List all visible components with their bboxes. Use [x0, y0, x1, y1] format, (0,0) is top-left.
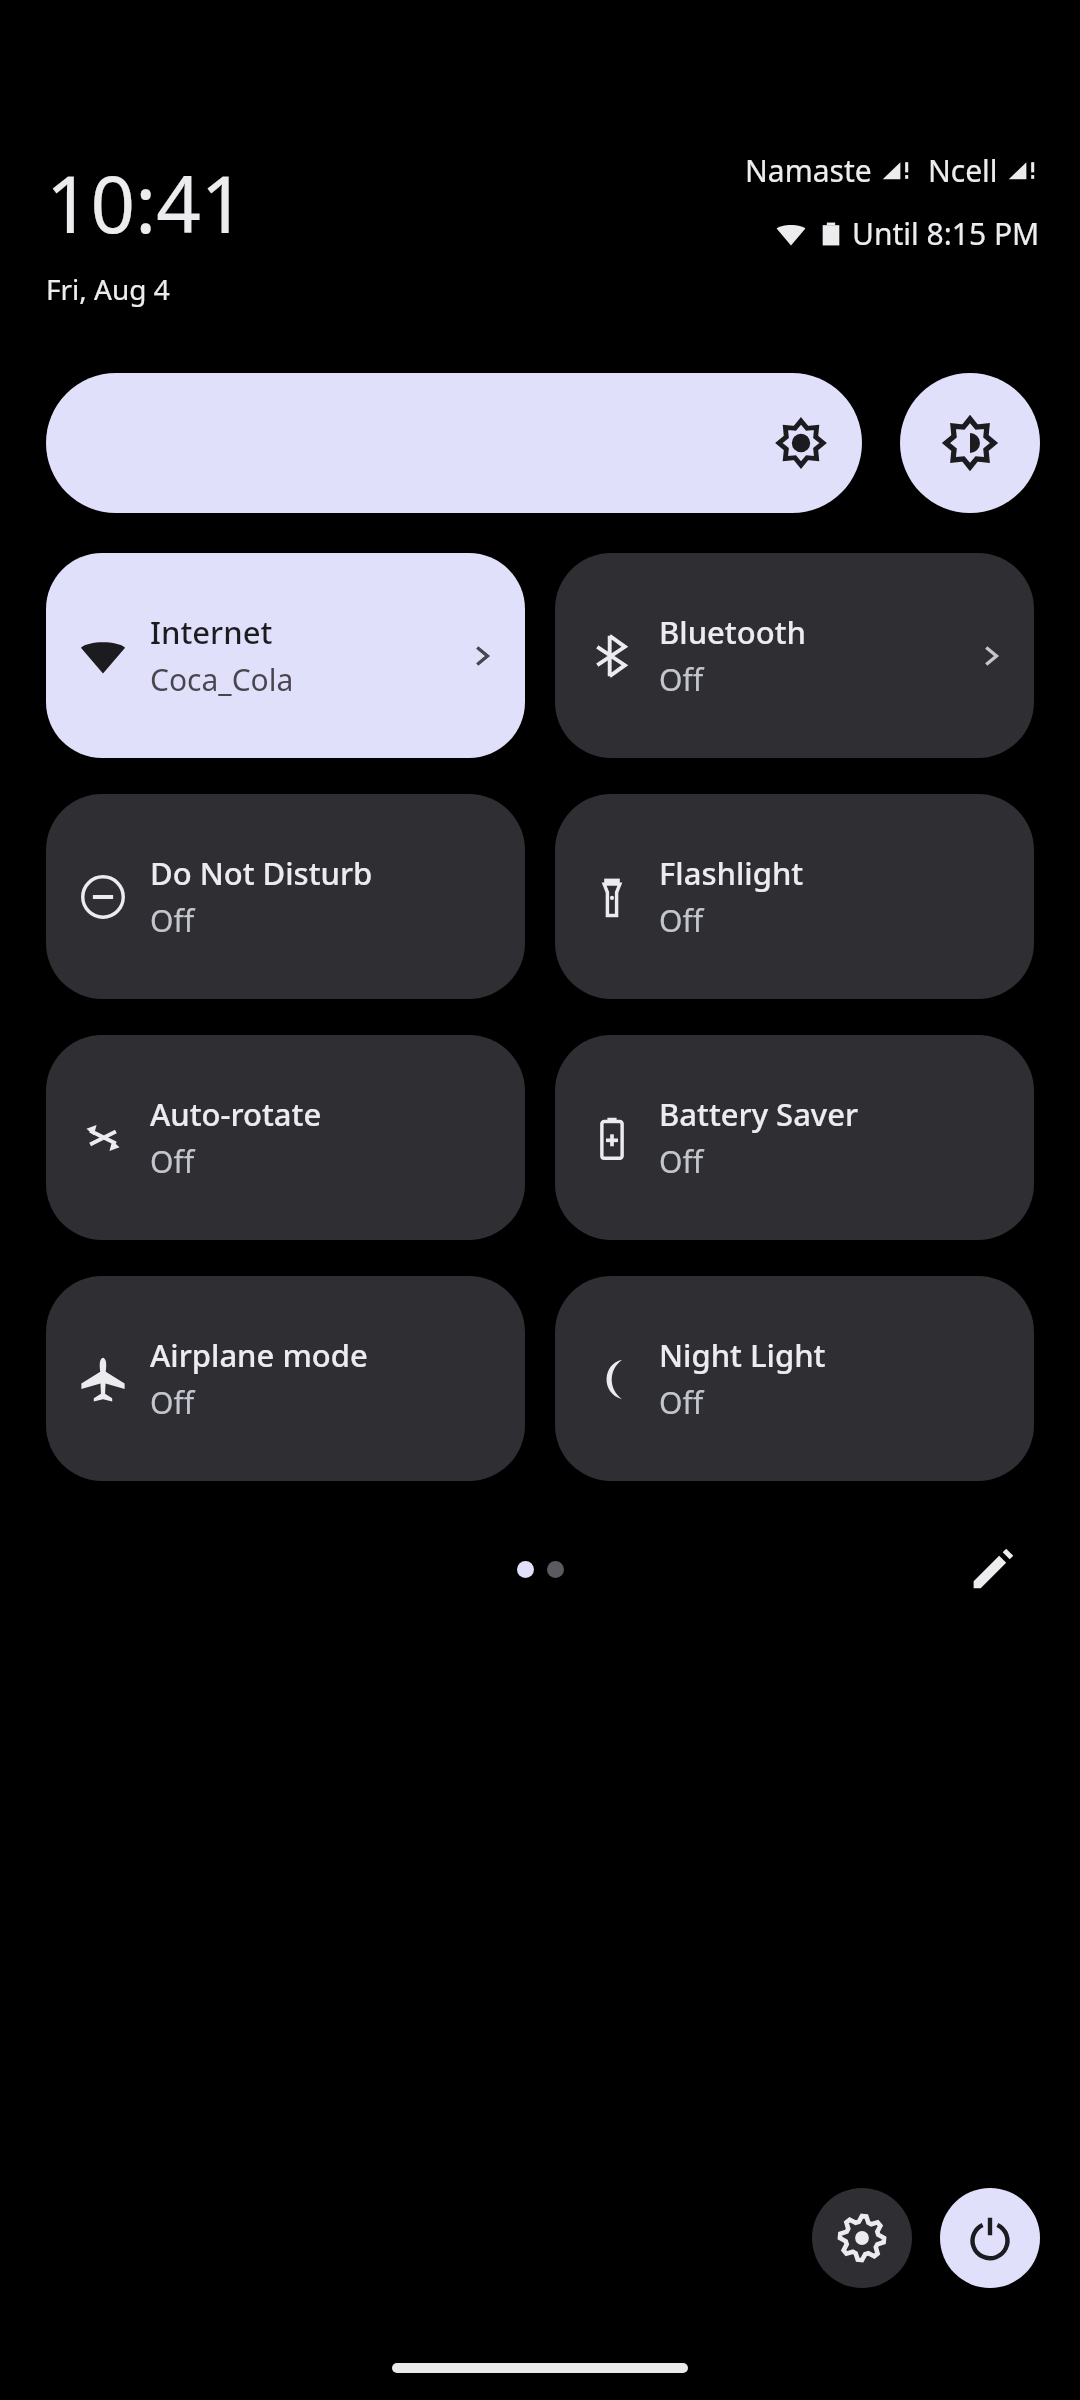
staticText: Auto-rotate [150, 1093, 322, 1135]
staticText: Off [150, 1382, 195, 1423]
staticText: Namaste [745, 150, 872, 191]
button[interactable]: Auto brightness [900, 373, 1040, 513]
staticText: Ncell [928, 150, 998, 191]
button[interactable]: Do Not Disturb [46, 794, 525, 999]
button[interactable]: Power [940, 2188, 1040, 2288]
staticText: Coca_Cola [150, 659, 294, 700]
staticText: Until 8:15 PM [852, 213, 1040, 254]
button[interactable]: Edit tiles [958, 1534, 1028, 1604]
button[interactable]: Airplane mode [46, 1276, 525, 1481]
button[interactable]: Night Light [555, 1276, 1034, 1481]
staticText: Do Not Disturb [150, 852, 373, 894]
staticText: Fri, Aug 4 [46, 270, 170, 308]
staticText: Flashlight [659, 852, 804, 894]
staticText: 10:41 [46, 150, 246, 256]
button[interactable]: Battery Saver [555, 1035, 1034, 1240]
staticText: Off [150, 1141, 195, 1182]
staticText: Night Light [659, 1334, 826, 1376]
button[interactable]: Brightness [46, 373, 862, 513]
staticText: Off [659, 1141, 704, 1182]
button[interactable]: Settings [812, 2188, 912, 2288]
staticText: Airplane mode [150, 1334, 368, 1376]
staticText: Internet [150, 611, 273, 653]
staticText: Bluetooth [659, 611, 806, 653]
staticText: Off [659, 900, 704, 941]
staticText: Off [150, 900, 195, 941]
button[interactable]: Internet [46, 553, 525, 758]
staticText: Off [659, 659, 704, 700]
button[interactable]: Flashlight [555, 794, 1034, 999]
staticText: Battery Saver [659, 1093, 859, 1135]
button[interactable]: Auto-rotate [46, 1035, 525, 1240]
button[interactable]: Bluetooth [555, 553, 1034, 758]
staticText: Off [659, 1382, 704, 1423]
